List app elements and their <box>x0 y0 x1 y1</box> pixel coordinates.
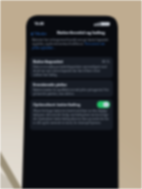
staticText: Enestående ytelse <box>33 82 67 87</box>
button[interactable]: Enestående ytelse <box>30 80 113 97</box>
staticText: Optimalisert batterilading <box>33 102 81 107</box>
button[interactable]: Optimalisert batterilading <box>33 101 110 108</box>
staticText: iPhone forlenger batteriets levetid ved … <box>33 109 110 125</box>
button[interactable]: Tilbake <box>29 31 48 36</box>
staticText: Batterikapasitet <box>33 59 63 64</box>
button[interactable]: Batterikapasitet <box>30 57 113 78</box>
other: Optimalisert batterilading på <box>97 101 110 108</box>
staticText: Batterier har en begrenset levetid som g… <box>32 38 111 50</box>
staticText: 85 % <box>102 59 110 64</box>
staticText: Dette er en måling av batterikapasiteten… <box>33 65 110 77</box>
staticText: Tilbake <box>34 31 47 36</box>
staticText: Batterilevetid og lading <box>57 30 105 36</box>
staticText: 10:48 <box>34 21 44 26</box>
staticText: Batteriet støtter for øyeblikket normal … <box>33 88 110 96</box>
